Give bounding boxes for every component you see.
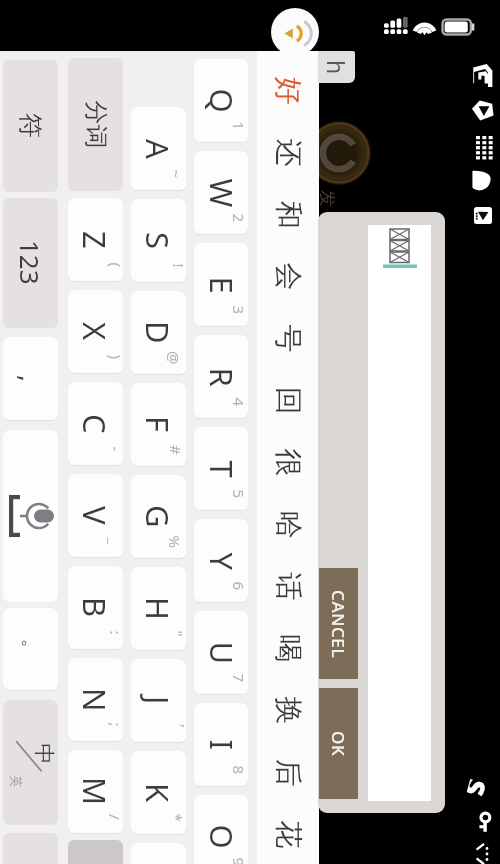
button[interactable]: O [194,795,248,864]
staticText: F [137,416,179,433]
button[interactable]: 号 [257,307,319,369]
staticText: O [200,824,242,849]
button[interactable]: C [68,382,123,466]
staticText: 很 [270,448,305,476]
button[interactable]: Z [68,198,123,282]
staticText: : [105,630,123,635]
button[interactable]: A [131,107,186,191]
button[interactable]: K [131,751,186,835]
staticText: T [200,460,242,478]
button[interactable]: M [68,750,123,834]
button[interactable]: X [68,290,123,374]
staticText: X [74,322,116,341]
button[interactable]: T [194,427,248,511]
button[interactable]: h [318,51,355,83]
button[interactable]: CANCEL [319,568,358,679]
staticText: 换 [270,696,305,724]
button[interactable]: 换 [257,679,319,741]
button[interactable]: J [131,659,186,743]
staticText: K [137,783,179,803]
staticText: ’ [169,724,186,727]
button[interactable]: Sound [271,8,319,56]
button[interactable]: 分词 [68,58,123,191]
button[interactable]: U [194,611,248,695]
button[interactable]: W [194,151,248,235]
staticText: 英 [8,775,23,787]
button[interactable]: Y [194,519,248,603]
button[interactable]: 话 [257,555,319,617]
staticText: A [137,139,179,159]
button[interactable]: G [131,475,186,559]
button[interactable]: Q [194,59,248,143]
button[interactable]: S [131,199,186,283]
staticText: 号 [270,324,305,352]
staticText: h [321,60,352,75]
staticText: S [137,232,179,250]
staticText: 会 [270,262,305,290]
button[interactable]: E [194,243,248,327]
button[interactable]: 符 [3,60,58,192]
button[interactable]: R [194,335,248,419]
staticText: / [105,814,123,820]
staticText: R [200,367,242,387]
staticText: @ [164,351,184,365]
staticText: 话 [270,572,305,600]
staticText: D [137,321,179,344]
staticText: 3 [228,305,248,314]
staticText: Y [200,552,242,570]
button[interactable]: 。 [3,608,58,691]
button[interactable]: , [3,337,58,421]
staticText: V [74,506,116,525]
button[interactable]: 喝 [257,617,319,679]
staticText: ) [105,354,123,359]
staticText: G [137,505,179,528]
button[interactable] [368,225,431,801]
button[interactable]: 和 [257,183,319,245]
button[interactable]: F [131,383,186,467]
staticText: ; [105,722,123,727]
button[interactable]: 好 [257,59,319,121]
staticText: 7 [228,673,248,682]
button[interactable]: H [131,567,186,651]
staticText: 。 [16,638,44,660]
button[interactable]: 123 [3,198,58,328]
staticText: 好 [270,76,305,104]
staticText: Z [74,231,116,249]
staticText: 2 [228,213,248,222]
button[interactable]: V [68,474,123,558]
staticText: 9 [228,857,248,864]
staticText: 后 [270,758,305,786]
staticText: 哈 [270,510,305,538]
staticText: 1 [228,121,248,130]
button[interactable]: 哈 [257,493,319,555]
staticText: 5 [228,489,248,498]
button[interactable] [68,840,123,864]
staticText: 发 [317,190,338,207]
button[interactable]: Switch Chinese English [3,700,58,825]
button[interactable]: B [68,566,123,650]
button[interactable]: I [194,703,248,787]
staticText: 和 [270,200,305,228]
staticText: W [200,178,242,207]
button[interactable]: 后 [257,741,319,803]
staticText: 4 [228,397,248,406]
staticText: * [166,813,186,822]
staticText: U [200,641,242,664]
button[interactable]: 很 [257,431,319,493]
staticText: H [137,597,179,620]
button[interactable]: 花 [257,803,319,864]
staticText: E [200,276,242,294]
button[interactable]: 回 [257,369,319,431]
staticText: Q [200,88,242,113]
button[interactable]: 会 [257,245,319,307]
staticText: N [74,688,116,712]
button[interactable]: 还 [257,121,319,183]
staticText: C [74,414,116,434]
button[interactable]: OK [319,688,358,799]
button[interactable]: Voice input [3,430,58,602]
button[interactable]: D [131,291,186,375]
button[interactable]: N [68,658,123,742]
staticText: " [167,630,186,637]
